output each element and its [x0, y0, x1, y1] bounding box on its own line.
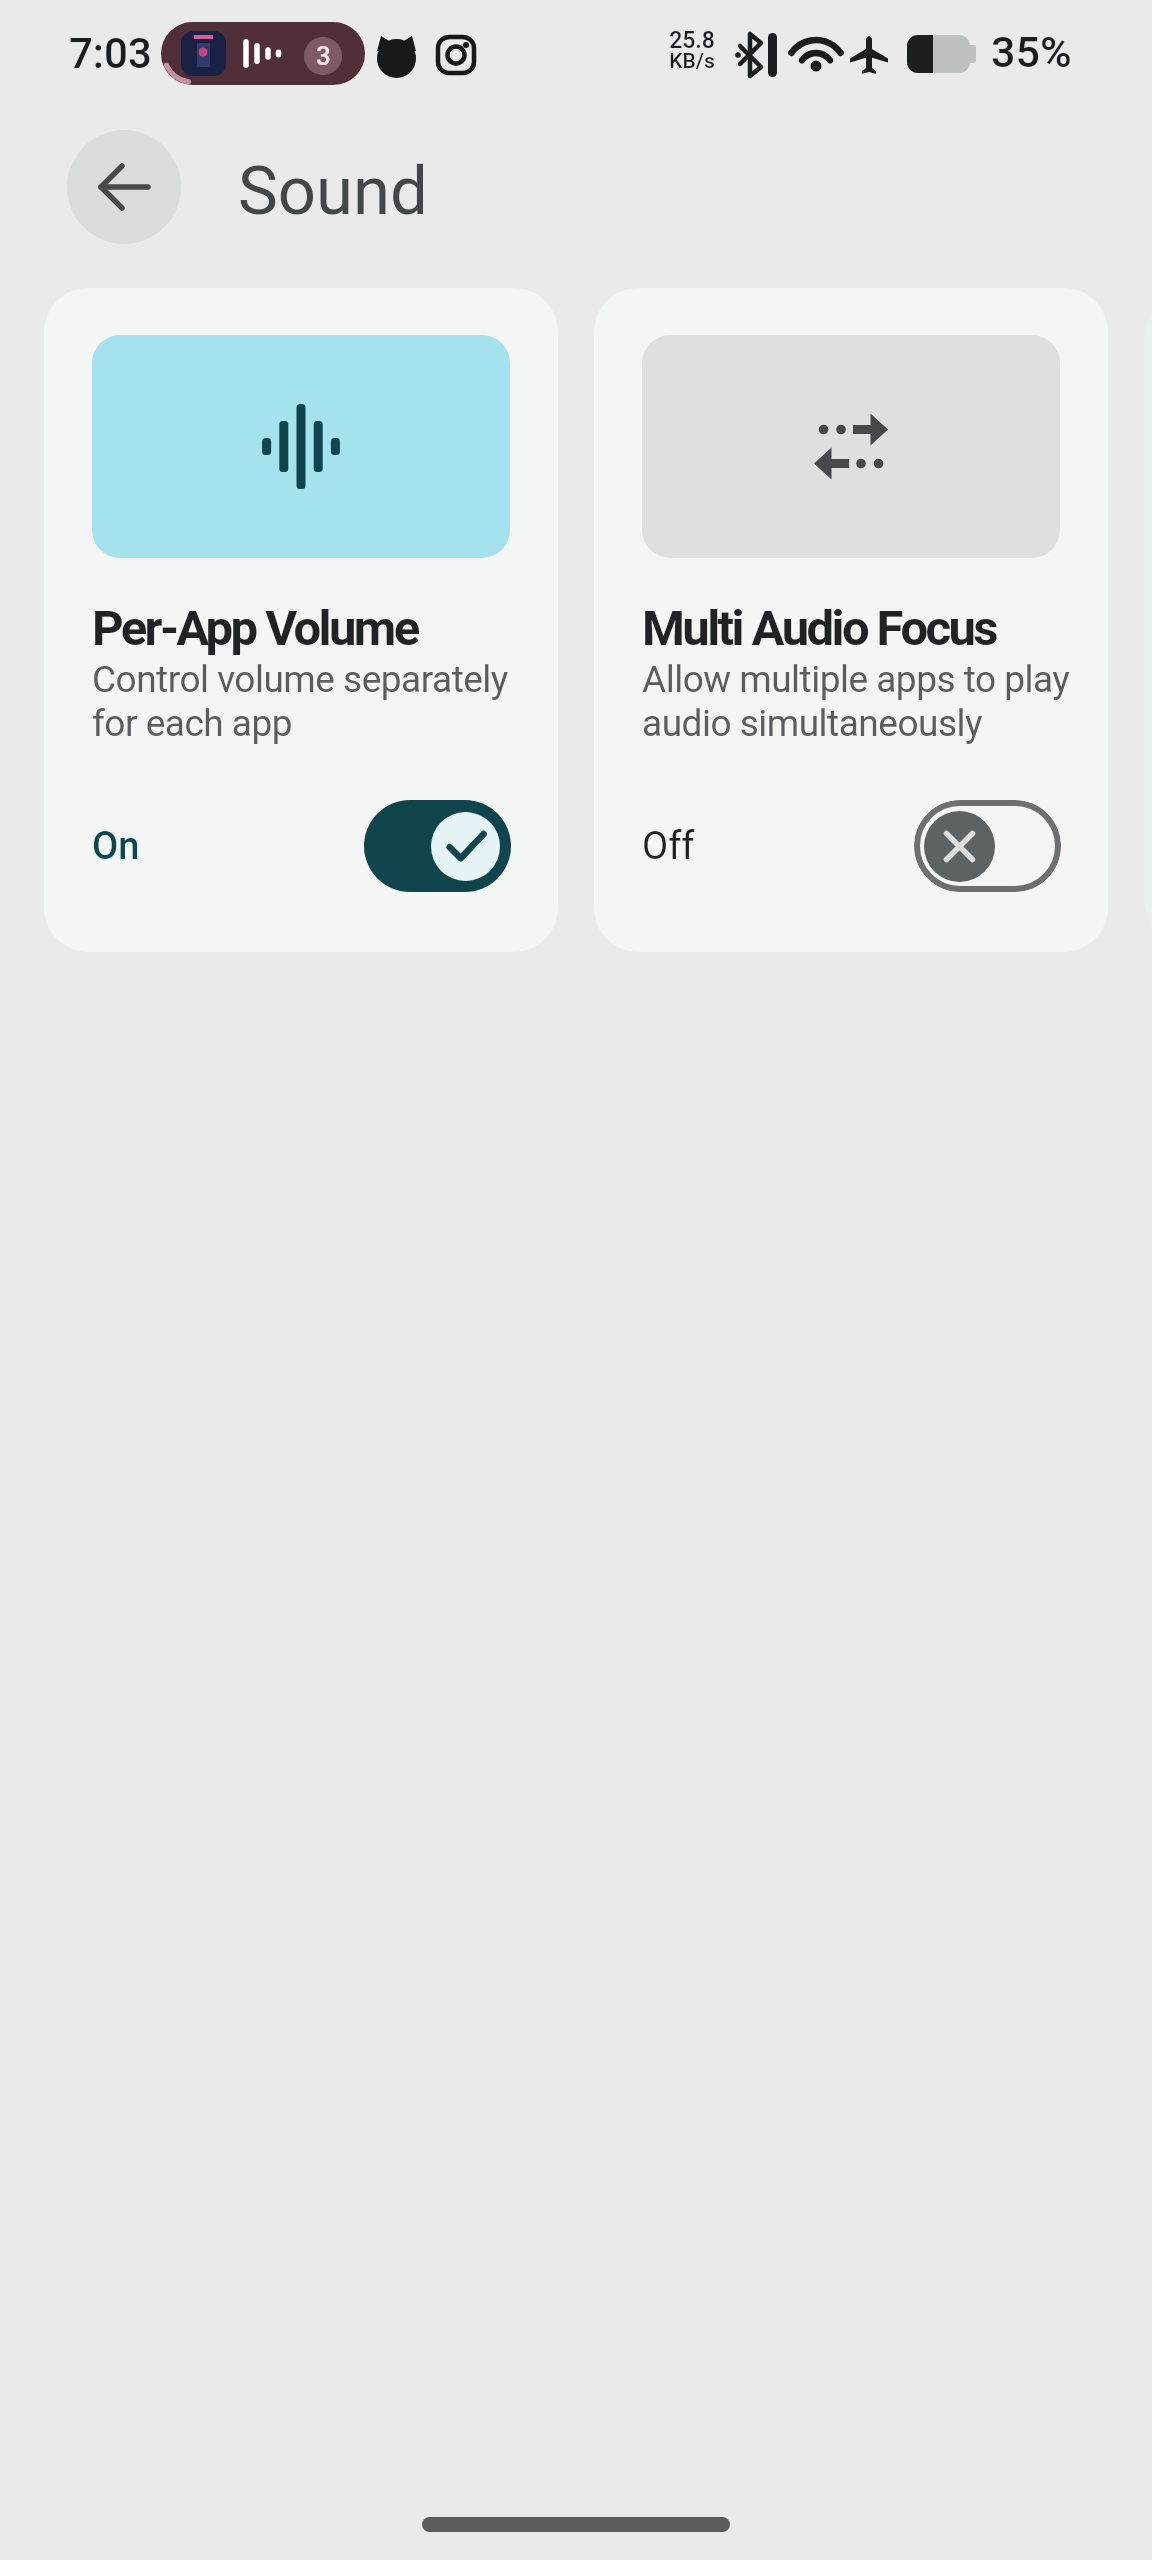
button[interactable]: Per-App Volume — [44, 288, 558, 952]
staticText: Control volume separately — [92, 658, 508, 701]
staticText: Sound — [238, 152, 428, 231]
staticText: audio simultaneously — [642, 702, 982, 745]
button[interactable] — [914, 800, 1061, 892]
staticText: KB/s — [662, 49, 722, 74]
staticText: 25.8 — [662, 27, 722, 54]
staticText: 35% — [991, 27, 1072, 77]
staticText: 7:03 — [69, 29, 152, 78]
staticText: Multi Audio Focus — [642, 600, 996, 657]
staticText: Allow multiple apps to play — [642, 658, 1070, 701]
staticText: for each app — [92, 702, 293, 745]
button[interactable]: 3 — [161, 22, 365, 85]
button[interactable] — [364, 800, 511, 892]
staticText: Per-App Volume — [92, 600, 418, 657]
staticText: On — [92, 824, 140, 869]
staticText: Off — [642, 824, 695, 869]
button[interactable] — [67, 130, 181, 244]
staticText: 3 — [316, 41, 331, 71]
button[interactable] — [422, 2517, 730, 2532]
button[interactable]: Multi Audio Focus — [594, 288, 1108, 952]
